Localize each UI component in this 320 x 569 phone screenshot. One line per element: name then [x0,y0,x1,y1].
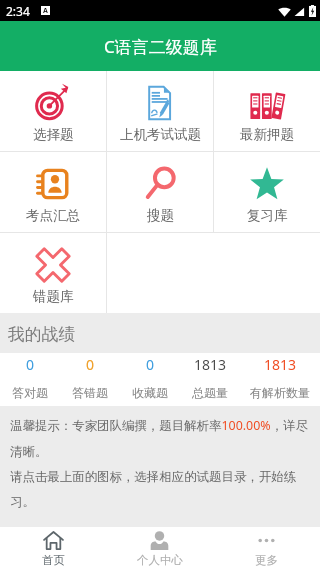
staticText: 0 [26,355,35,374]
staticText: 2:34 [6,3,30,19]
staticText: 收藏题 [132,385,168,400]
staticText: 考点汇总 [26,207,80,224]
staticText: 1813 [264,355,297,374]
staticText: 总题量 [192,385,228,400]
staticText: 0 [86,355,95,374]
staticText: 选择题 [33,126,74,143]
button[interactable]: 0 [60,353,120,400]
staticText: 搜题 [147,207,174,224]
staticText: 有解析数量 [250,385,310,400]
button[interactable]: 错题库 [0,233,106,313]
staticText: 温馨提示：专家团队编撰，题目解析率100.00%，详尽清晰。 请点击最上面的图标… [10,417,310,509]
button[interactable]: 个人中心 [106,527,213,567]
staticText: 答对题 [12,385,48,400]
staticText: 最新押题 [240,126,294,143]
staticText: 复习库 [247,207,288,224]
staticText: 0 [146,355,155,374]
button[interactable]: 选择题 [0,71,106,151]
button[interactable]: C语言二级题库 [0,21,320,71]
staticText: 1813 [194,355,227,374]
button[interactable]: 首页 [0,527,106,567]
button[interactable]: 更多 [213,527,320,567]
staticText: 我的战绩 [8,324,76,345]
button[interactable]: 最新押题 [214,71,320,151]
staticText: 答错题 [72,385,108,400]
staticText: 上机考试试题 [120,126,201,143]
button[interactable]: 1813 [240,353,320,400]
staticText: 首页 [42,553,65,567]
staticText: 错题库 [33,288,74,305]
button[interactable]: 搜题 [107,152,213,232]
button[interactable]: 1813 [180,353,240,400]
button[interactable]: 0 [0,353,60,400]
button[interactable]: 考点汇总 [0,152,106,232]
staticText: C语言二级题库 [104,35,217,58]
staticText: 更多 [255,553,278,567]
button[interactable]: 0 [120,353,180,400]
button[interactable]: 上机考试试题 [107,71,213,151]
staticText: 个人中心 [137,553,183,567]
button[interactable]: 复习库 [214,152,320,232]
staticText: A [43,6,48,15]
